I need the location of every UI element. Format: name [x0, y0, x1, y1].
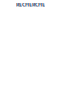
staticText: RECHERCHE [16, 1, 45, 8]
